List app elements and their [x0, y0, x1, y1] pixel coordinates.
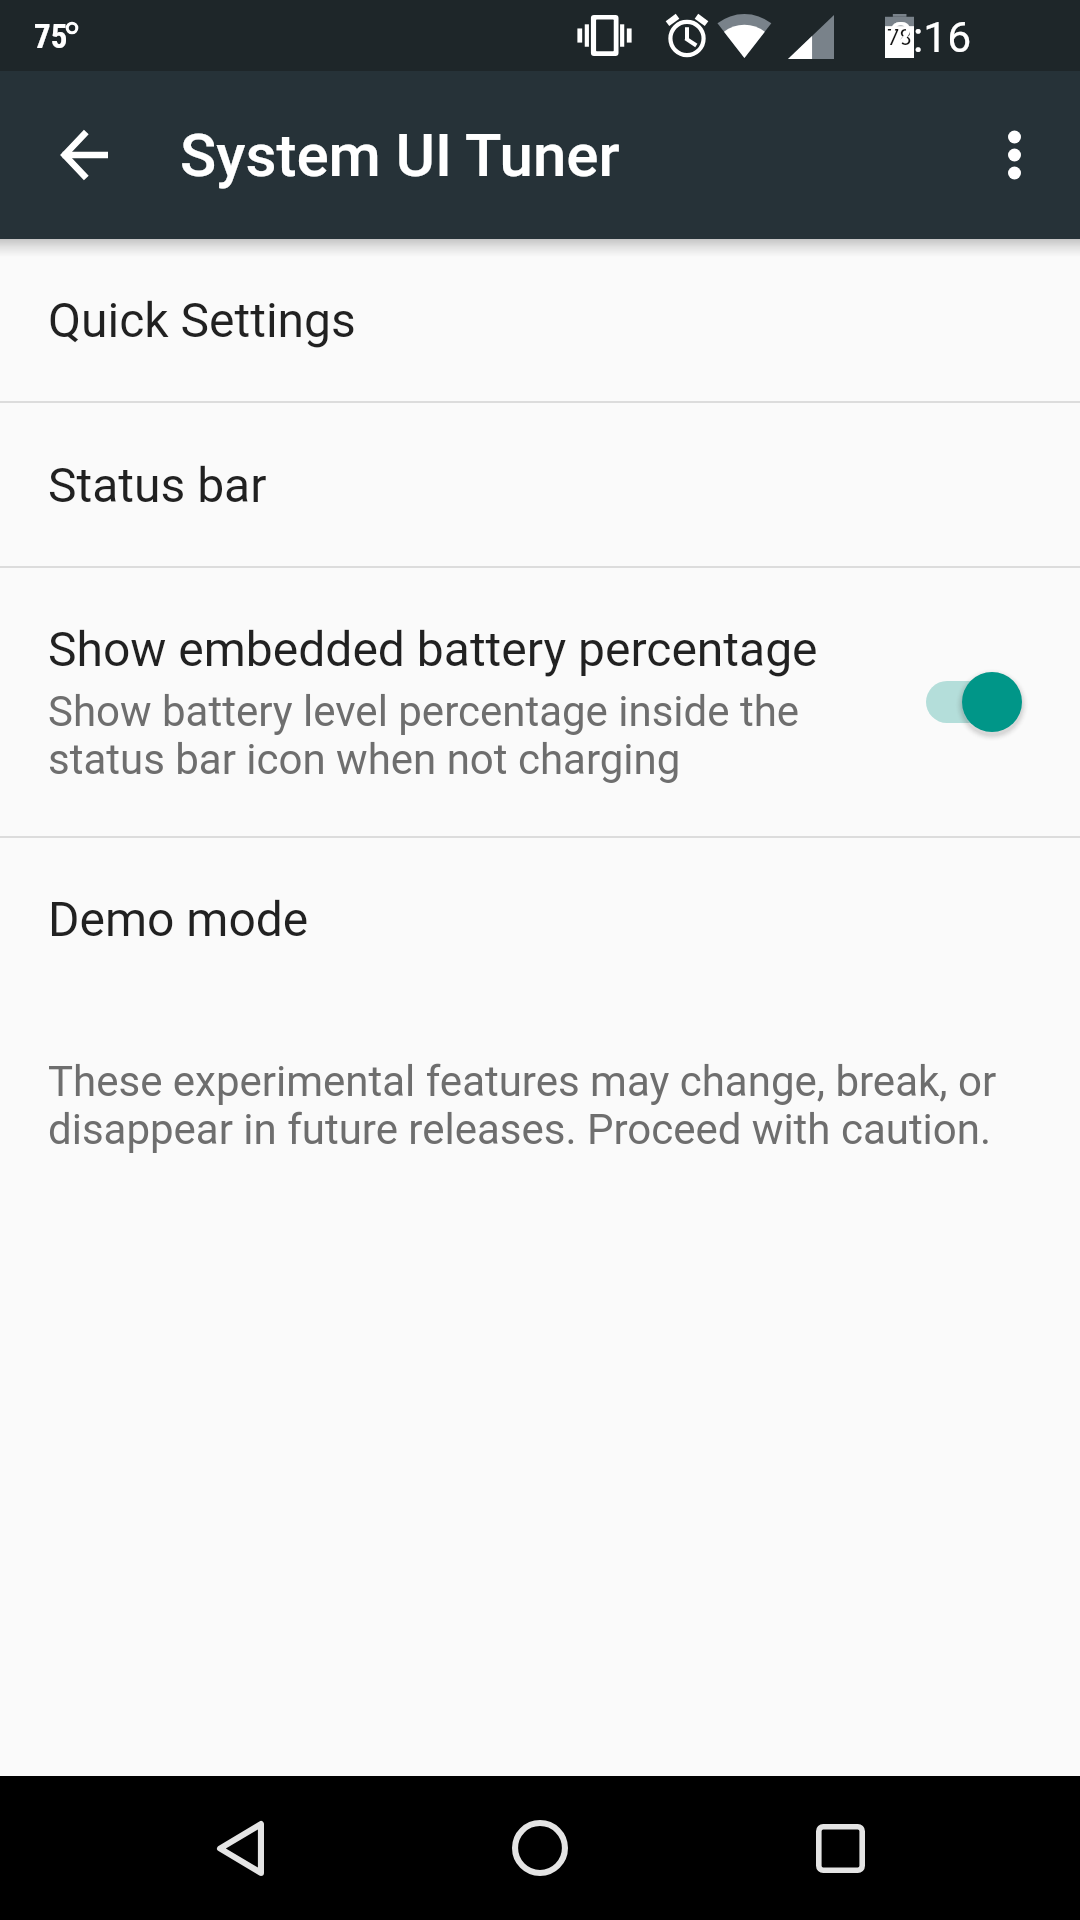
staticText: 75: [34, 17, 68, 56]
staticText: Status bar: [48, 457, 267, 513]
staticText: These experimental features may change, …: [48, 1058, 1032, 1154]
staticText: 78: [887, 25, 912, 51]
staticText: Demo mode: [48, 891, 309, 947]
button[interactable]: Home: [420, 1776, 660, 1920]
button[interactable]: Recent apps: [720, 1776, 960, 1920]
staticText: Quick Settings: [48, 292, 356, 348]
staticText: Show embedded battery percentage: [48, 621, 818, 677]
button[interactable]: More options: [948, 71, 1080, 239]
button[interactable]: Navigate up: [0, 71, 168, 239]
staticText: System UI Tuner: [180, 120, 620, 190]
button[interactable]: Back: [120, 1776, 360, 1920]
button[interactable]: Status bar: [0, 403, 1080, 566]
staticText: Show battery level percentage inside the…: [48, 688, 800, 784]
button[interactable]: Show embedded battery percentage: [0, 568, 1080, 836]
button[interactable]: Demo mode: [0, 838, 1080, 1000]
staticText: 2:16: [889, 12, 972, 62]
button[interactable]: Quick Settings: [0, 239, 1080, 401]
